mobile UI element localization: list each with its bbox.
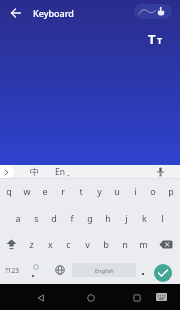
button[interactable] bbox=[4, 169, 9, 176]
button[interactable] bbox=[156, 167, 165, 177]
staticText: 中 bbox=[30, 166, 39, 177]
button[interactable] bbox=[154, 264, 172, 282]
staticText: t bbox=[79, 185, 83, 197]
button[interactable] bbox=[37, 294, 45, 302]
staticText: y bbox=[97, 185, 102, 197]
staticText: i bbox=[134, 185, 137, 197]
staticText: En bbox=[55, 166, 65, 178]
staticText: b bbox=[103, 238, 109, 250]
staticText: g bbox=[87, 212, 93, 224]
staticText: a bbox=[15, 212, 21, 224]
staticText: Keyboard bbox=[33, 7, 74, 19]
button[interactable] bbox=[156, 293, 167, 301]
staticText: k bbox=[142, 212, 147, 224]
button[interactable]: English bbox=[72, 263, 136, 277]
staticText: c bbox=[66, 238, 71, 250]
staticText: v bbox=[85, 238, 90, 250]
button[interactable]: T bbox=[147, 29, 169, 49]
staticText: x bbox=[48, 238, 53, 250]
staticText: z bbox=[29, 238, 34, 250]
staticText: n bbox=[122, 238, 128, 250]
button[interactable] bbox=[55, 265, 65, 275]
button[interactable] bbox=[139, 265, 147, 277]
staticText: h bbox=[105, 212, 111, 224]
staticText: T bbox=[148, 30, 156, 48]
button[interactable] bbox=[6, 239, 18, 250]
staticText: j bbox=[125, 212, 128, 224]
staticText: u bbox=[114, 185, 120, 197]
button[interactable] bbox=[11, 8, 21, 18]
staticText: English bbox=[95, 267, 114, 274]
staticText: w bbox=[23, 185, 31, 197]
staticText: l bbox=[161, 212, 164, 224]
staticText: f bbox=[70, 212, 74, 224]
staticText: T bbox=[157, 34, 163, 46]
staticText: q bbox=[6, 185, 12, 197]
button[interactable] bbox=[87, 294, 95, 302]
staticText: m bbox=[139, 238, 148, 250]
staticText: d bbox=[51, 212, 57, 224]
staticText: s bbox=[34, 212, 39, 224]
button[interactable]: 中 bbox=[24, 165, 44, 178]
button[interactable]: En bbox=[50, 165, 70, 178]
staticText: r bbox=[61, 185, 65, 197]
button[interactable] bbox=[134, 4, 172, 19]
button[interactable] bbox=[133, 294, 141, 302]
staticText: ?123 bbox=[5, 266, 19, 275]
staticText: e bbox=[42, 185, 48, 197]
staticText: o bbox=[150, 185, 156, 197]
button[interactable]: ?123 bbox=[1, 263, 23, 277]
button[interactable] bbox=[159, 240, 173, 249]
staticText: p bbox=[168, 185, 174, 197]
